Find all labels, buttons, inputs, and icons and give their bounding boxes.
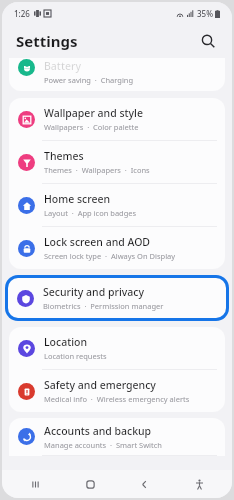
staticText: Biometrics · Permission manager: [43, 301, 164, 311]
staticText: Security and privacy: [43, 285, 144, 299]
staticText: Lock screen and AOD: [44, 235, 151, 249]
button[interactable]: Recents: [20, 470, 50, 498]
button[interactable]: Location: [9, 327, 225, 369]
button[interactable]: Back: [129, 470, 159, 498]
button[interactable]: Themes: [9, 141, 225, 183]
staticText: Screen lock type · Always On Display: [44, 251, 176, 261]
staticText: Themes: [44, 149, 84, 163]
button[interactable]: Home: [75, 470, 105, 498]
staticText: Home screen: [44, 192, 111, 206]
button[interactable]: Security and privacy: [8, 278, 226, 318]
button[interactable]: Accounts and backup: [9, 418, 225, 455]
staticText: Medical info · Wireless emergency alerts: [44, 394, 190, 404]
staticText: Accounts and backup: [44, 424, 152, 438]
button[interactable]: Battery: [9, 58, 225, 91]
staticText: Power saving · Charging: [44, 75, 134, 85]
button[interactable]: Safety and emergency: [9, 370, 225, 412]
staticText: Battery: [44, 59, 81, 73]
staticText: Wallpaper and style: [44, 106, 143, 120]
staticText: Layout · App icon badges: [44, 208, 137, 218]
staticText: Wallpapers · Color palette: [44, 122, 139, 132]
staticText: Location: [44, 335, 88, 349]
staticText: 35%: [197, 8, 213, 19]
staticText: Manage accounts · Smart Switch: [44, 440, 162, 450]
staticText: 1:26: [14, 8, 30, 19]
staticText: Location requests: [44, 351, 107, 361]
staticText: Themes · Wallpapers · Icons: [44, 165, 150, 175]
button[interactable]: Search: [194, 27, 222, 55]
button[interactable]: Home screen: [9, 184, 225, 226]
button[interactable]: Accessibility: [184, 470, 214, 498]
button[interactable]: Wallpaper and style: [9, 98, 225, 140]
button[interactable]: Lock screen and AOD: [9, 227, 225, 269]
staticText: Safety and emergency: [44, 378, 156, 392]
staticText: Settings: [16, 31, 78, 51]
